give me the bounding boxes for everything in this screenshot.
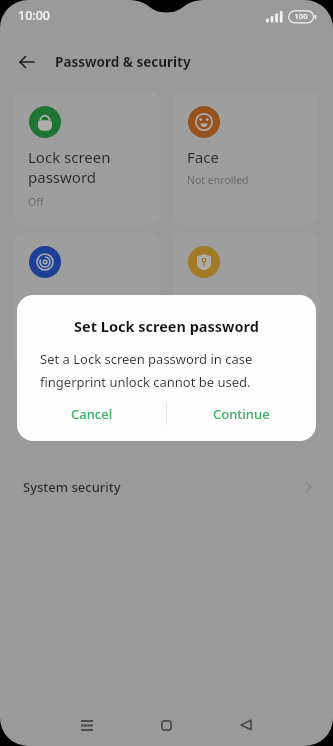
staticText: Password & security [55,53,191,71]
button[interactable]: Lock screen password [14,92,160,225]
button[interactable] [14,50,42,74]
staticText: Lock screen password [28,147,111,187]
button[interactable] [139,710,193,740]
staticText: Cancel [71,405,113,423]
staticText: Continue [213,405,270,423]
staticText: System security [23,478,121,496]
button[interactable]: Continue [167,397,316,431]
button[interactable] [14,232,160,365]
staticText: Set Lock screen password [17,316,316,336]
button[interactable] [173,232,319,365]
staticText: 100 [288,11,314,21]
staticText: 10:00 [18,7,51,24]
button[interactable]: Cancel [17,397,166,431]
button[interactable]: System security [0,470,333,504]
button[interactable] [218,710,272,740]
staticText: Face [187,147,219,167]
button[interactable]: Face [173,92,319,225]
button[interactable] [60,710,114,740]
staticText: Off [28,195,44,209]
staticText: Set a Lock screen password in case finge… [40,350,253,391]
staticText: Not enrolled [187,173,249,187]
